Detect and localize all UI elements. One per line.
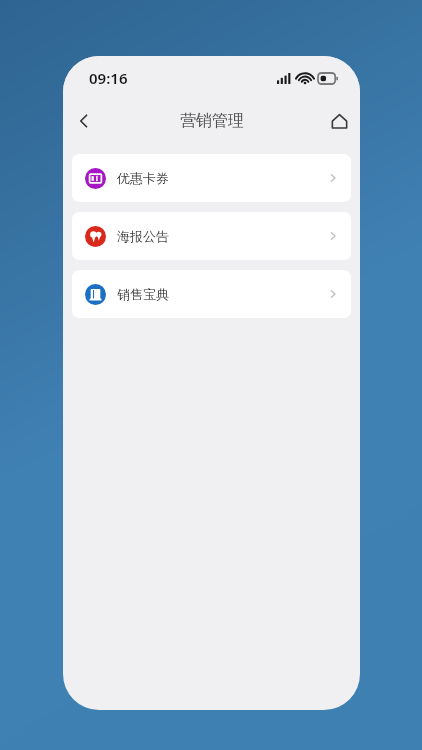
button[interactable]: 销售宝典 [72,270,351,318]
button[interactable]: Home [318,100,360,142]
staticText: 海报公告 [117,228,169,244]
staticText: 09:16 [89,68,128,88]
button[interactable]: 海报公告 [72,212,351,260]
staticText: 优惠卡券 [117,170,169,186]
staticText: 营销管理 [180,111,244,131]
button[interactable]: 优惠卡券 [72,154,351,202]
button[interactable]: Back [63,100,105,142]
staticText: 销售宝典 [117,286,169,302]
